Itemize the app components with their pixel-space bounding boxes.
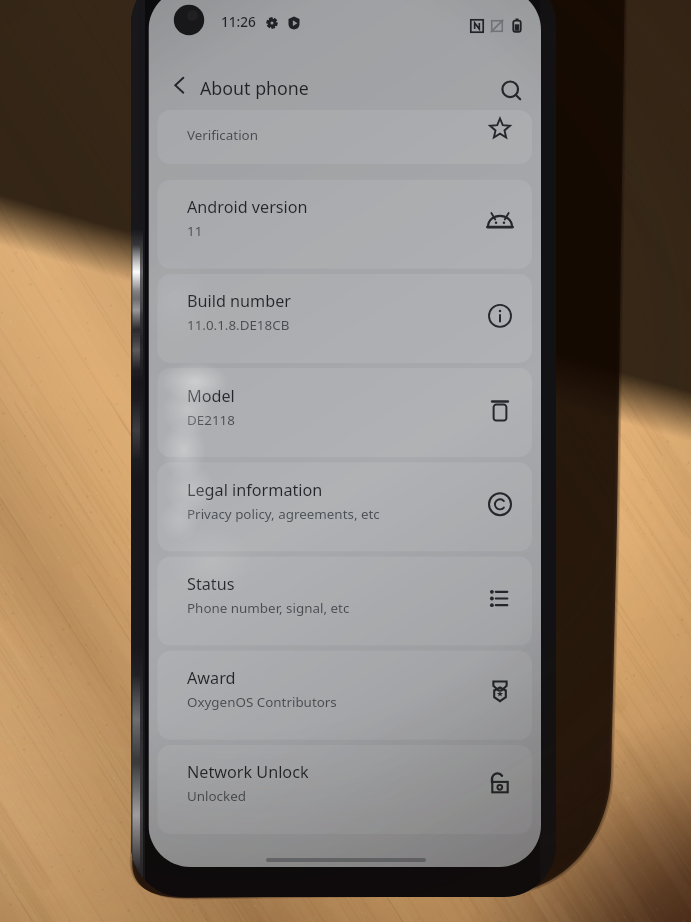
button[interactable]: About phone [0,0,691,922]
